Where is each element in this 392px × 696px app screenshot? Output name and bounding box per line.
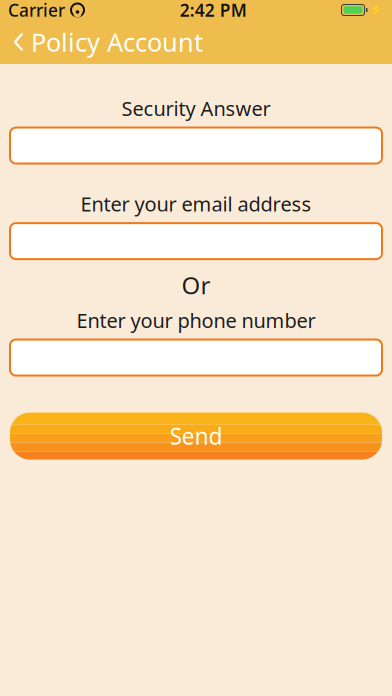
staticText: Policy Account	[31, 25, 203, 59]
button[interactable]: Send	[10, 413, 382, 460]
button[interactable]	[10, 223, 382, 259]
staticText: Or	[181, 269, 210, 301]
button[interactable]: Policy Account	[0, 17, 203, 67]
staticText: Security Answer	[121, 95, 270, 122]
staticText: Enter your email address	[80, 191, 311, 217]
staticText: ⚡	[369, 3, 384, 17]
staticText	[65, 0, 70, 21]
staticText: 2:42 PM	[180, 0, 247, 21]
staticText: Send	[169, 421, 222, 451]
button[interactable]	[10, 128, 382, 164]
button[interactable]	[10, 340, 382, 376]
staticText: Carrier	[8, 0, 65, 21]
staticText: Enter your phone number	[76, 307, 315, 334]
